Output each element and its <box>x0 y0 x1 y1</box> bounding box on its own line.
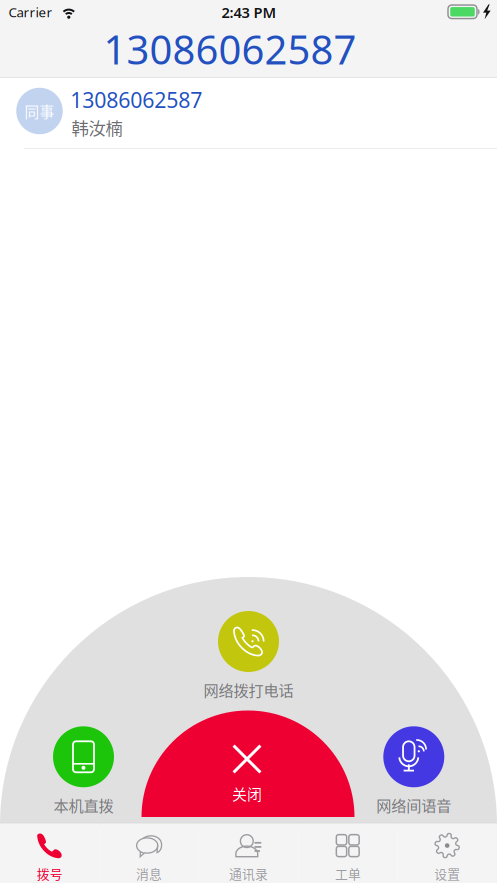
button[interactable]: 设置 <box>398 822 497 883</box>
staticText: 2:43 PM <box>221 2 276 22</box>
staticText: 13086062587 <box>70 85 202 114</box>
button[interactable]: 关闭 <box>197 735 297 815</box>
staticText: 13086062587 <box>103 22 356 75</box>
button[interactable]: 网络拨打电话 <box>198 611 298 697</box>
staticText: 设置 <box>434 864 460 883</box>
button[interactable]: 同事 <box>0 78 497 149</box>
button[interactable]: 通讯录 <box>199 822 298 883</box>
button[interactable]: 本机直拨 <box>33 727 133 813</box>
staticText: 消息 <box>136 864 162 883</box>
staticText: 本机直拨 <box>53 794 113 816</box>
button[interactable]: 拨号 <box>0 822 99 883</box>
button[interactable]: 工单 <box>298 822 398 883</box>
staticText: 网络拨打电话 <box>203 678 293 700</box>
staticText: 工单 <box>335 864 361 883</box>
staticText: 同事 <box>24 100 54 122</box>
staticText: 通讯录 <box>229 864 268 883</box>
staticText: 拨号 <box>37 864 63 883</box>
staticText: Carrier <box>8 3 52 21</box>
staticText: 关闭 <box>232 783 262 804</box>
button[interactable]: 网络间语音 <box>364 727 464 813</box>
button[interactable]: 消息 <box>99 822 199 883</box>
staticText: 韩汝楠 <box>71 115 122 140</box>
staticText: 网络间语音 <box>376 794 451 816</box>
